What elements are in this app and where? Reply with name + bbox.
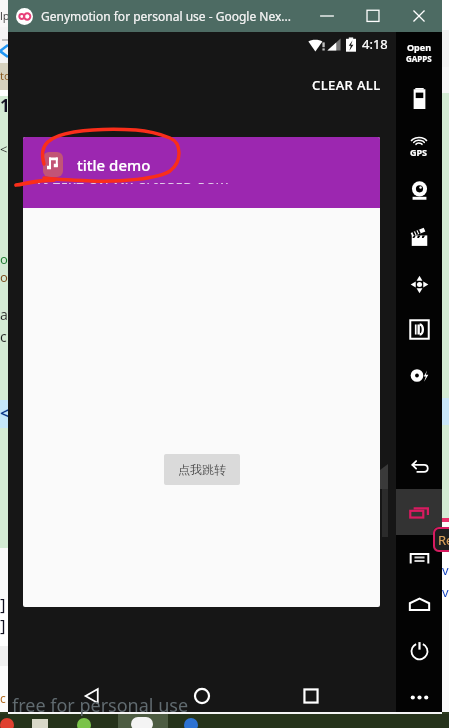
button[interactable]: Screen recorder [396, 214, 442, 260]
staticText: v [442, 561, 449, 579]
button[interactable]: Power [396, 627, 442, 673]
button[interactable]: Back [396, 443, 442, 489]
button[interactable]: Rotate [396, 261, 442, 307]
staticText: c [0, 327, 7, 346]
staticText: 点我跳转 [178, 462, 226, 477]
staticText: Re [438, 531, 449, 549]
button[interactable]: 点我跳转 [164, 454, 240, 485]
staticText: Genymotion for personal use - Google Nex… [41, 8, 291, 24]
staticText: ] [0, 614, 6, 637]
button[interactable]: Home [182, 676, 222, 716]
button[interactable]: Close [396, 0, 442, 32]
staticText: o [0, 268, 8, 286]
staticText: < [0, 140, 8, 158]
button[interactable]: Recent apps [291, 676, 331, 716]
staticText: ] [0, 593, 6, 616]
button[interactable]: Identifiers [396, 306, 442, 352]
staticText: GAPPS [406, 53, 432, 64]
staticText: o [0, 250, 8, 268]
staticText: c [0, 690, 6, 706]
staticText: Open [407, 41, 432, 53]
button[interactable]: Disk IO [396, 352, 442, 398]
staticText: 4:18 [362, 35, 388, 53]
staticText: < [0, 402, 8, 424]
button[interactable]: More [396, 674, 442, 720]
button[interactable]: title demo [23, 137, 380, 607]
button[interactable]: Maximize [350, 0, 396, 32]
staticText: free for personal use [12, 693, 189, 718]
button[interactable]: Recent apps [396, 489, 442, 535]
button[interactable]: CLEAR ALL [306, 72, 387, 98]
staticText: a [0, 305, 8, 324]
staticText: to [0, 68, 8, 83]
button[interactable]: Home [396, 581, 442, 627]
button[interactable]: Camera [396, 167, 442, 213]
staticText: title demo [77, 155, 151, 175]
staticText: lp [0, 8, 8, 23]
button[interactable]: Minimize [304, 0, 350, 32]
button[interactable]: Open [396, 35, 442, 69]
button[interactable]: GPS [396, 130, 442, 164]
button[interactable]: Battery [396, 75, 442, 121]
staticText: AI TEXT ON MY CLIPPED ROW [35, 179, 229, 184]
button[interactable]: Back [72, 676, 112, 716]
staticText: GPS [410, 146, 428, 158]
button[interactable]: Menu [396, 535, 442, 581]
staticText: 1 [0, 94, 8, 117]
staticText: CLEAR ALL [312, 76, 381, 94]
staticText: v [442, 583, 449, 601]
